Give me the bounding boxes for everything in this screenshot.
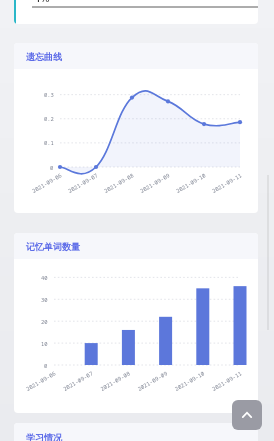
button[interactable]: Back to top (232, 400, 262, 430)
button[interactable] (14, 0, 258, 24)
button[interactable] (14, 233, 258, 413)
button[interactable] (14, 423, 258, 441)
button[interactable] (14, 43, 258, 213)
